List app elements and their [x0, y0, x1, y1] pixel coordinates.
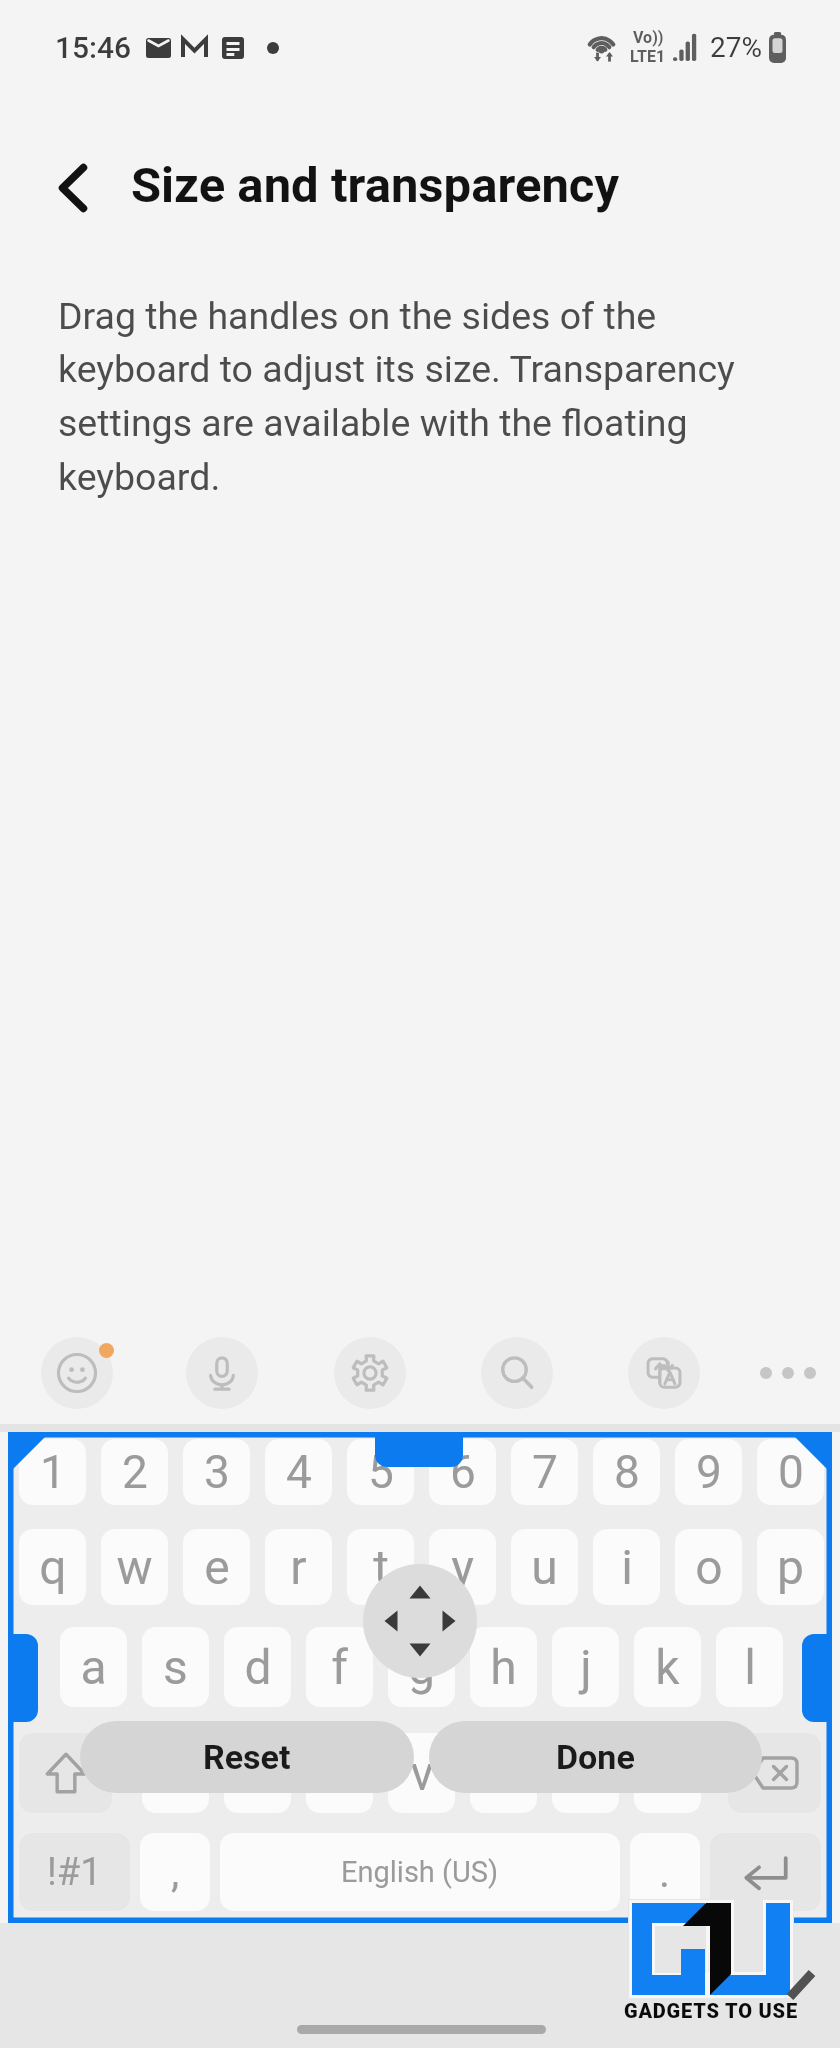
- button[interactable]: Resize keyboard height: [375, 1437, 463, 1467]
- staticText: z: [164, 1745, 188, 1801]
- button[interactable]: Search: [481, 1337, 553, 1409]
- button[interactable]: Done: [429, 1721, 762, 1793]
- button[interactable]: 3: [183, 1439, 250, 1505]
- button[interactable]: p: [757, 1529, 824, 1605]
- staticText: i: [621, 1539, 633, 1595]
- button[interactable]: d: [224, 1627, 291, 1707]
- button[interactable]: More options: [752, 1337, 824, 1409]
- button[interactable]: l: [716, 1627, 783, 1707]
- button[interactable]: !#1: [19, 1833, 130, 1911]
- staticText: 8: [614, 1445, 640, 1499]
- button[interactable]: h: [470, 1627, 537, 1707]
- button[interactable]: c: [306, 1733, 373, 1813]
- staticText: 1: [40, 1445, 66, 1499]
- staticText: f: [331, 1639, 348, 1695]
- button[interactable]: w: [101, 1529, 168, 1605]
- staticText: 7: [532, 1445, 558, 1499]
- button[interactable]: z: [142, 1733, 209, 1813]
- staticText: p: [777, 1539, 804, 1595]
- button[interactable]: 6: [429, 1439, 496, 1505]
- button[interactable]: 0: [757, 1439, 824, 1505]
- button[interactable]: Settings: [334, 1337, 406, 1409]
- button[interactable]: f: [306, 1627, 373, 1707]
- staticText: c: [327, 1745, 353, 1801]
- button[interactable]: 7: [511, 1439, 578, 1505]
- button[interactable]: b: [470, 1733, 537, 1813]
- staticText: 6: [450, 1445, 476, 1499]
- staticText: d: [244, 1639, 272, 1695]
- staticText: 4: [286, 1445, 312, 1499]
- button[interactable]: Translate: [628, 1337, 700, 1409]
- button[interactable]: q: [19, 1529, 86, 1605]
- staticText: .: [659, 1848, 671, 1897]
- staticText: !#1: [47, 1850, 102, 1895]
- button[interactable]: Back: [17, 132, 129, 244]
- staticText: u: [531, 1539, 558, 1595]
- button[interactable]: j: [552, 1627, 619, 1707]
- staticText: Done: [556, 1737, 635, 1777]
- button[interactable]: 9: [675, 1439, 742, 1505]
- button[interactable]: Resize keyboard width from right: [802, 1634, 832, 1722]
- button[interactable]: g: [388, 1627, 455, 1707]
- staticText: t: [373, 1539, 389, 1595]
- button[interactable]: y: [429, 1529, 496, 1605]
- button[interactable]: Move keyboard: [363, 1564, 477, 1678]
- button[interactable]: Resize keyboard width from left: [8, 1634, 38, 1722]
- button[interactable]: 5: [347, 1439, 414, 1505]
- staticText: o: [695, 1539, 723, 1595]
- staticText: j: [580, 1639, 592, 1695]
- button[interactable]: a: [60, 1627, 127, 1707]
- button[interactable]: .: [630, 1833, 700, 1911]
- button[interactable]: r: [265, 1529, 332, 1605]
- button[interactable]: Shift: [19, 1733, 112, 1813]
- staticText: s: [163, 1639, 188, 1695]
- staticText: q: [39, 1539, 67, 1595]
- staticText: e: [204, 1539, 230, 1595]
- staticText: LTE1: [630, 47, 666, 66]
- staticText: 27%: [710, 31, 762, 64]
- button[interactable]: u: [511, 1529, 578, 1605]
- button[interactable]: o: [675, 1529, 742, 1605]
- staticText: a: [80, 1639, 107, 1695]
- button[interactable]: e: [183, 1529, 250, 1605]
- staticText: Reset: [203, 1737, 291, 1777]
- staticText: n: [572, 1745, 599, 1801]
- button[interactable]: 8: [593, 1439, 660, 1505]
- button[interactable]: t: [347, 1529, 414, 1605]
- button[interactable]: Delete: [728, 1733, 821, 1813]
- button[interactable]: i: [593, 1529, 660, 1605]
- button[interactable]: 2: [101, 1439, 168, 1505]
- staticText: r: [290, 1539, 307, 1595]
- staticText: Drag the handles on the sides of the key…: [58, 294, 748, 500]
- button[interactable]: x: [224, 1733, 291, 1813]
- button[interactable]: 1: [19, 1439, 86, 1505]
- button[interactable]: s: [142, 1627, 209, 1707]
- button[interactable]: Emoji: [41, 1337, 113, 1409]
- button[interactable]: k: [634, 1627, 701, 1707]
- staticText: g: [408, 1639, 435, 1695]
- staticText: y: [451, 1539, 474, 1595]
- button[interactable]: n: [552, 1733, 619, 1813]
- staticText: l: [744, 1639, 756, 1695]
- staticText: English (US): [341, 1855, 499, 1889]
- staticText: m: [646, 1745, 689, 1801]
- button[interactable]: Enter: [710, 1833, 821, 1911]
- staticText: 2: [122, 1445, 148, 1499]
- button[interactable]: m: [634, 1733, 701, 1813]
- staticText: b: [490, 1745, 517, 1801]
- staticText: h: [490, 1639, 517, 1695]
- button[interactable]: English (US): [220, 1833, 620, 1911]
- staticText: Size and transparency: [131, 157, 620, 214]
- staticText: k: [655, 1639, 680, 1695]
- staticText: 5: [368, 1445, 394, 1499]
- button[interactable]: v: [388, 1733, 455, 1813]
- staticText: Vo)): [633, 28, 664, 47]
- button[interactable]: 4: [265, 1439, 332, 1505]
- staticText: v: [410, 1745, 434, 1801]
- staticText: ,: [171, 1848, 180, 1897]
- button[interactable]: ,: [140, 1833, 210, 1911]
- staticText: x: [246, 1745, 270, 1801]
- button[interactable]: Voice input: [186, 1337, 258, 1409]
- staticText: w: [116, 1539, 153, 1595]
- button[interactable]: Reset: [80, 1721, 414, 1793]
